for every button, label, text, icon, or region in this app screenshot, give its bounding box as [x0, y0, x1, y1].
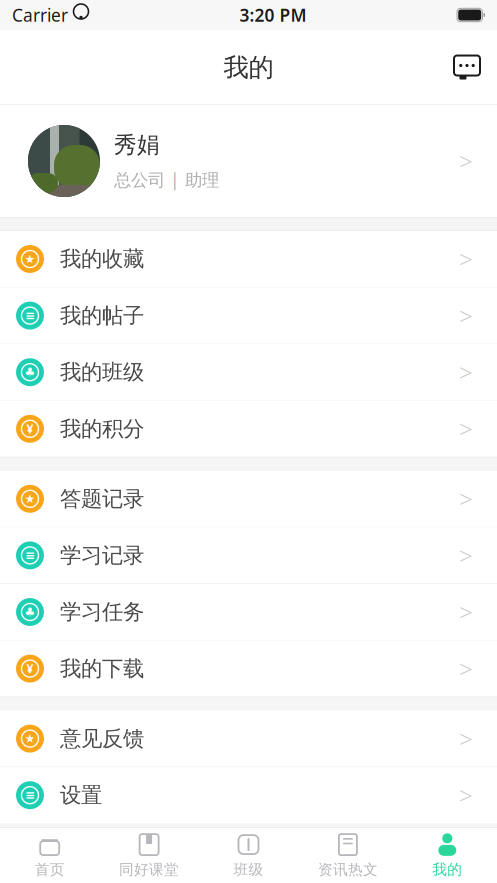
- button[interactable]: 同好课堂: [99, 831, 199, 881]
- button[interactable]: 资讯热文: [298, 831, 398, 881]
- staticText: 我的帖子: [60, 302, 144, 329]
- staticText: 答题记录: [60, 486, 144, 512]
- staticText: 班级: [233, 861, 263, 879]
- staticText: 设置: [60, 782, 102, 808]
- staticText: 我的下载: [60, 655, 144, 682]
- button[interactable]: ★: [0, 231, 497, 287]
- staticText: >: [459, 243, 473, 275]
- staticText: >: [459, 145, 473, 177]
- staticText: ≡: [25, 309, 35, 322]
- staticText: >: [459, 653, 473, 685]
- button[interactable]: ♣: [0, 584, 497, 640]
- button[interactable]: ★: [0, 711, 497, 767]
- staticText: 秀娟: [114, 131, 160, 159]
- button[interactable]: 班级: [199, 831, 298, 881]
- button[interactable]: ≡: [0, 288, 497, 344]
- staticText: 学习记录: [60, 542, 144, 568]
- staticText: >: [459, 596, 473, 628]
- staticText: 同好课堂: [119, 861, 179, 879]
- button[interactable]: 秀娟: [0, 105, 497, 217]
- staticText: >: [459, 539, 473, 571]
- staticText: ♣: [24, 365, 35, 379]
- staticText: >: [459, 779, 473, 811]
- staticText: ≡: [25, 788, 35, 802]
- button[interactable]: 我的: [398, 831, 497, 881]
- staticText: >: [459, 483, 473, 515]
- staticText: 总公司 | 助理: [114, 168, 219, 191]
- staticText: 我的积分: [60, 416, 144, 442]
- staticText: 意见反馈: [60, 725, 144, 752]
- staticText: >: [459, 413, 473, 445]
- button[interactable]: 首页: [0, 831, 99, 881]
- button[interactable]: ♣: [0, 344, 497, 400]
- staticText: >: [459, 356, 473, 388]
- staticText: ¥: [26, 421, 33, 437]
- button[interactable]: ≡: [0, 527, 497, 583]
- staticText: 3:20 PM: [239, 3, 306, 26]
- button[interactable]: ¥: [0, 641, 497, 697]
- staticText: 我的班级: [60, 359, 144, 385]
- staticText: >: [459, 300, 473, 332]
- staticText: ♣: [24, 605, 35, 619]
- staticText: 我的: [223, 52, 273, 83]
- staticText: >: [459, 723, 473, 755]
- staticText: ¥: [26, 661, 33, 676]
- staticText: 资讯热文: [318, 861, 378, 879]
- staticText: 首页: [35, 861, 65, 879]
- staticText: ★: [24, 732, 35, 745]
- button[interactable]: ★: [0, 471, 497, 527]
- button[interactable]: ≡: [0, 767, 497, 823]
- button[interactable]: ¥: [0, 401, 497, 457]
- staticText: Carrier: [12, 3, 68, 26]
- staticText: ★: [24, 492, 35, 506]
- button[interactable]: Messages: [445, 45, 489, 89]
- staticText: ≡: [25, 549, 35, 562]
- staticText: 我的收藏: [60, 246, 144, 272]
- staticText: 学习任务: [60, 599, 144, 625]
- staticText: 我的: [432, 861, 462, 879]
- staticText: ★: [24, 252, 35, 266]
